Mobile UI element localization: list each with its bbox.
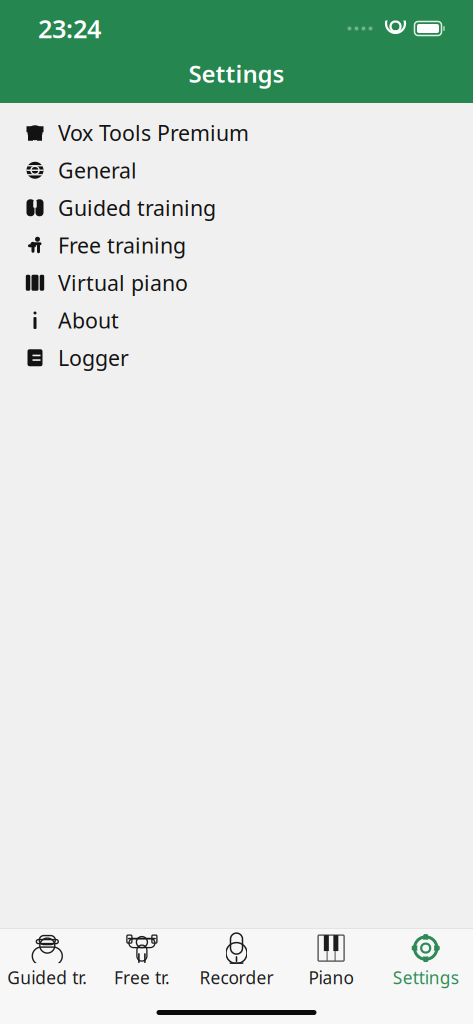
button[interactable]: Virtual piano	[0, 264, 473, 301]
button[interactable]: Vox Tools Premium	[0, 114, 473, 151]
staticText: General	[58, 156, 137, 184]
staticText: Free training	[58, 231, 186, 259]
staticText: Settings	[188, 58, 284, 89]
staticText: 23:24	[38, 12, 101, 45]
staticText: Vox Tools Premium	[58, 119, 249, 147]
button[interactable]: Recorder	[189, 933, 284, 989]
button[interactable]: Piano	[284, 933, 378, 989]
staticText: Guided training	[58, 194, 216, 222]
staticText: Recorder	[199, 966, 273, 989]
button[interactable]: Logger	[0, 339, 473, 376]
staticText: Piano	[309, 966, 354, 989]
button[interactable]: Settings	[378, 933, 473, 989]
button[interactable]: General	[0, 151, 473, 189]
staticText: Settings	[393, 966, 459, 989]
staticText: Logger	[58, 344, 129, 372]
staticText: Guided tr.	[7, 966, 87, 989]
button[interactable]: Guided training	[0, 189, 473, 226]
button[interactable]: About	[0, 301, 473, 339]
button[interactable]: Free training	[0, 226, 473, 264]
button[interactable]: Free tr.	[95, 933, 189, 989]
button[interactable]: Settings	[0, 50, 473, 96]
staticText: Free tr.	[114, 966, 170, 989]
staticText: About	[58, 306, 119, 334]
button[interactable]: Guided tr.	[0, 933, 95, 989]
staticText: Virtual piano	[58, 269, 188, 297]
